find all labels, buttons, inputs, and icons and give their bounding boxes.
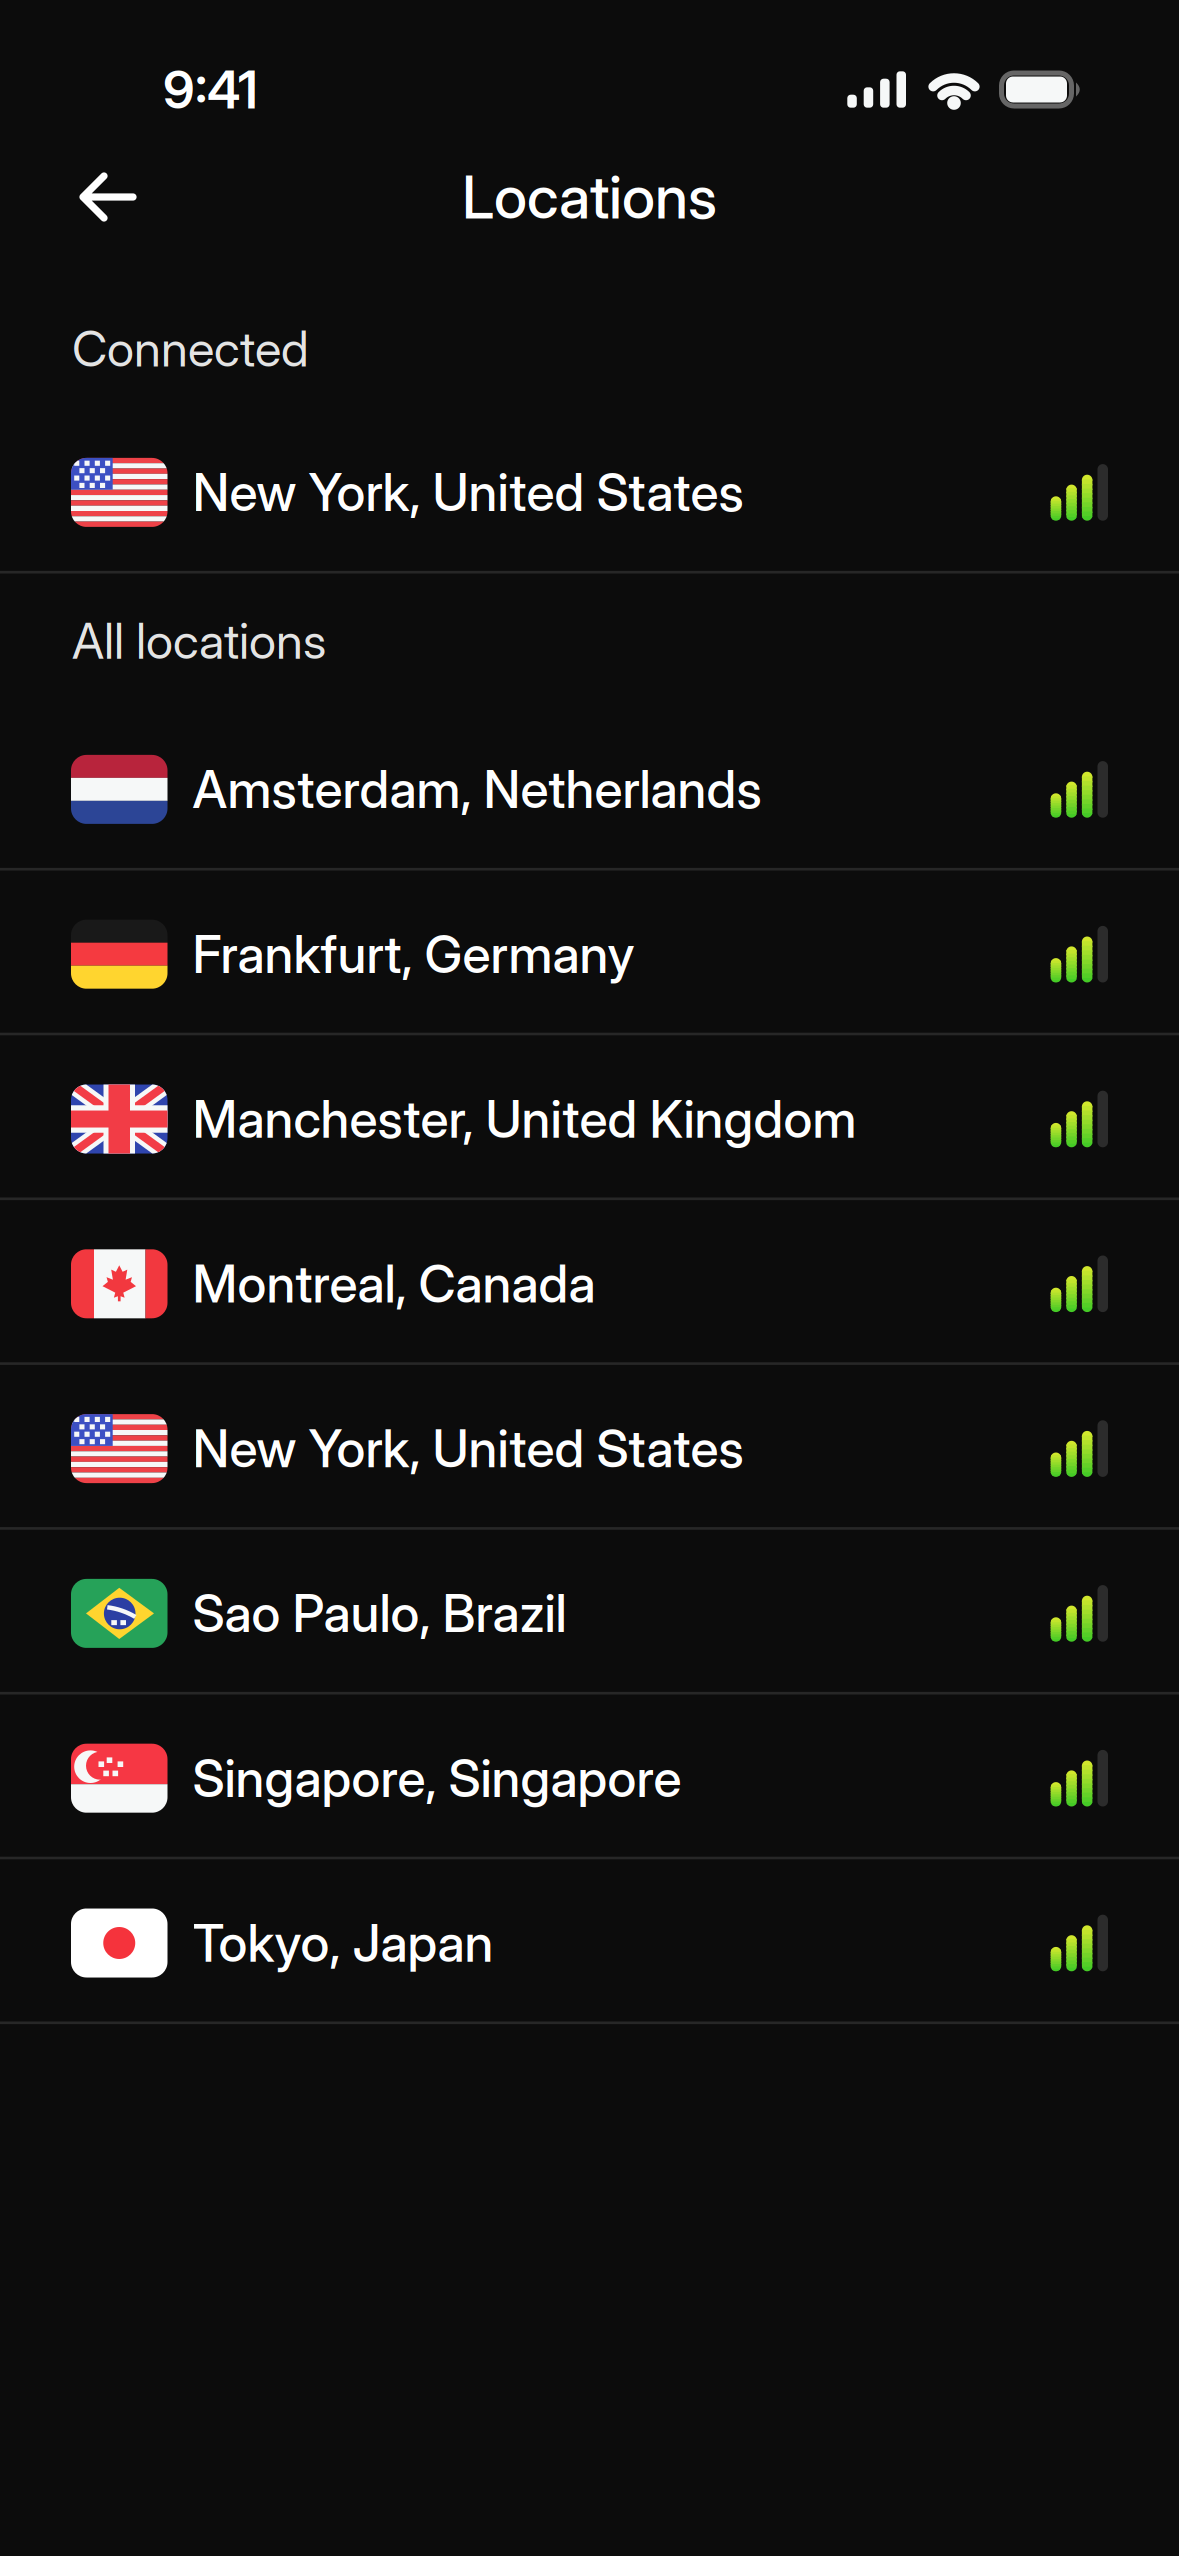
button[interactable]: Singapore, Singapore [0, 1696, 1179, 1861]
staticText: Tokyo, Japan [192, 1912, 493, 1974]
button[interactable]: New York, United States [0, 1366, 1179, 1531]
button[interactable]: Montreal, Canada [0, 1201, 1179, 1366]
button[interactable]: Sao Paulo, Brazil [0, 1531, 1179, 1696]
staticText: Montreal, Canada [192, 1253, 595, 1315]
staticText: New York, United States [192, 1417, 743, 1480]
staticText: Locations [462, 161, 717, 233]
staticText: Amsterdam, Netherlands [192, 758, 761, 821]
button[interactable]: Frankfurt, Germany [0, 872, 1179, 1037]
button[interactable]: Manchester, United Kingdom [0, 1037, 1179, 1201]
staticText: Frankfurt, Germany [192, 923, 634, 985]
button[interactable]: Amsterdam, Netherlands [0, 707, 1179, 872]
button[interactable]: Tokyo, Japan [0, 1861, 1179, 2025]
staticText: Manchester, United Kingdom [192, 1088, 856, 1150]
button[interactable]: Back [0, 174, 135, 220]
staticText: New York, United States [192, 461, 743, 524]
staticText: Singapore, Singapore [192, 1747, 681, 1809]
staticText: Connected [72, 319, 309, 378]
button[interactable]: New York, United States [0, 410, 1179, 575]
staticText: Sao Paulo, Brazil [192, 1582, 566, 1645]
staticText: 9:41 [163, 58, 258, 121]
staticText: All locations [72, 611, 326, 671]
